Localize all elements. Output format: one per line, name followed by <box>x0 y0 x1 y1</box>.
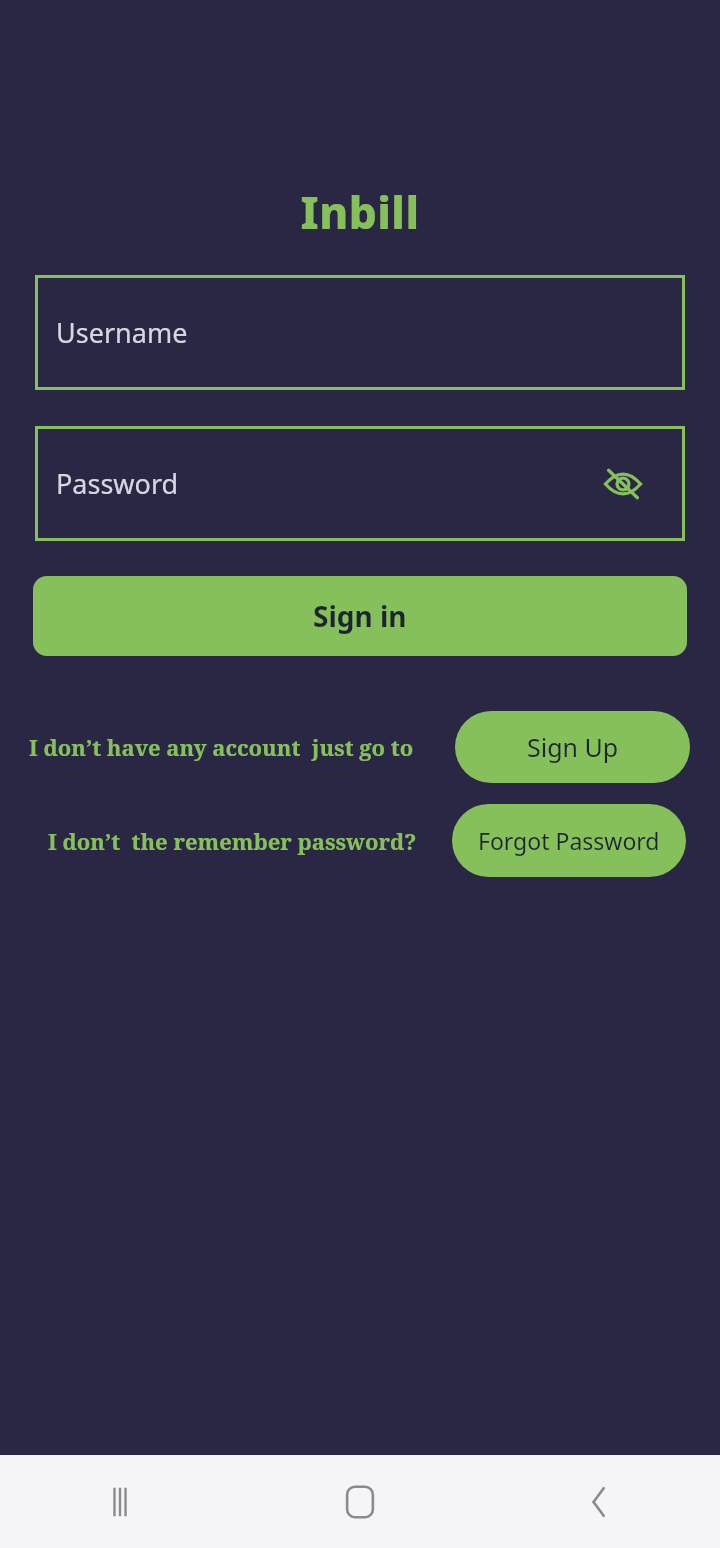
staticText: Forgot Password <box>478 825 660 856</box>
button[interactable]: Password <box>35 426 685 541</box>
button[interactable]: Sign Up <box>455 711 690 783</box>
staticText: Sign in <box>313 597 407 635</box>
staticText: Inbill <box>0 182 720 242</box>
button[interactable]: Forgot Password <box>452 804 686 877</box>
staticText: Password <box>56 465 179 502</box>
button[interactable]: Home <box>240 1455 480 1548</box>
button[interactable]: Back <box>480 1455 720 1548</box>
staticText: Username <box>56 314 188 351</box>
staticText: I don’t have any account just go to <box>29 732 414 762</box>
button[interactable]: Sign in <box>33 576 687 656</box>
staticText: Sign Up <box>527 730 619 764</box>
button[interactable]: Username <box>35 275 685 390</box>
button[interactable]: Recents <box>0 1455 240 1548</box>
staticText: I don’t the remember password? <box>48 826 417 856</box>
button[interactable]: Show password <box>599 460 647 508</box>
